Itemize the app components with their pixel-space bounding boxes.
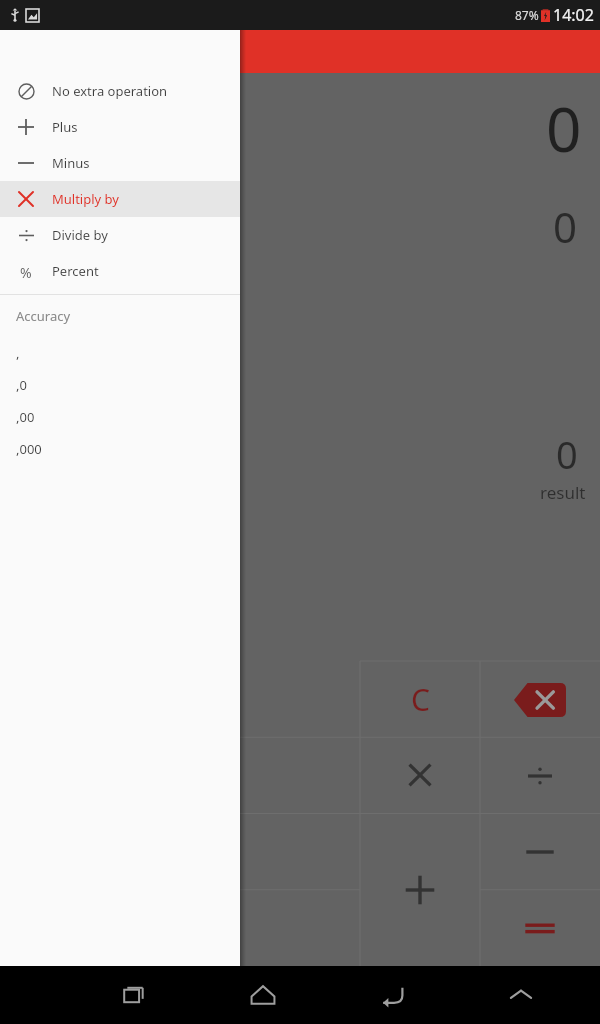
staticText: ,00	[16, 408, 35, 426]
staticText: Percent	[52, 262, 99, 280]
button[interactable]: Divide	[480, 738, 600, 814]
button[interactable]: %	[0, 253, 240, 289]
button[interactable]: ,00	[0, 401, 240, 433]
staticText: ,0	[16, 376, 27, 394]
staticText: Plus	[52, 118, 78, 136]
button[interactable]: Expand	[490, 966, 552, 1024]
staticText: Divide by	[52, 226, 108, 244]
button[interactable]: Minus	[0, 145, 240, 181]
button[interactable]: 3	[0, 814, 360, 890]
button[interactable]: ,000	[0, 433, 240, 465]
button[interactable]: Recents	[104, 966, 166, 1024]
button[interactable]: Plus	[360, 813, 480, 966]
button[interactable]: Home	[232, 966, 294, 1024]
button[interactable]: Back	[361, 966, 423, 1024]
button[interactable]: ,0	[0, 369, 240, 401]
button[interactable]: Plus	[0, 109, 240, 145]
staticText: No extra operation	[52, 82, 168, 100]
staticText: 0	[546, 86, 582, 170]
staticText: ,	[16, 344, 20, 362]
staticText: %	[20, 263, 32, 279]
staticText: result	[540, 481, 586, 504]
button[interactable]: Multiply	[360, 737, 480, 813]
staticText: 0	[553, 198, 578, 255]
button[interactable]: Divide by	[0, 217, 240, 253]
staticText: Minus	[52, 154, 90, 172]
button[interactable]: 9	[0, 661, 360, 738]
button[interactable]: Backspace	[480, 661, 600, 738]
staticText: C	[411, 679, 430, 720]
button[interactable]: No extra operation	[0, 73, 240, 109]
staticText: 14:02	[553, 4, 594, 26]
staticText: ,000	[16, 440, 42, 458]
button[interactable]: Equals	[480, 890, 600, 966]
button[interactable]: Decimal point	[0, 890, 360, 966]
button[interactable]: Minus	[480, 814, 600, 890]
staticText: 87%	[515, 7, 539, 23]
button[interactable]: C	[360, 661, 480, 737]
button[interactable]: 6	[0, 738, 360, 814]
staticText: Multiply by	[52, 190, 119, 208]
staticText: 0	[556, 428, 578, 480]
button[interactable]: Multiply by	[0, 181, 240, 217]
staticText: Accuracy	[16, 307, 71, 325]
